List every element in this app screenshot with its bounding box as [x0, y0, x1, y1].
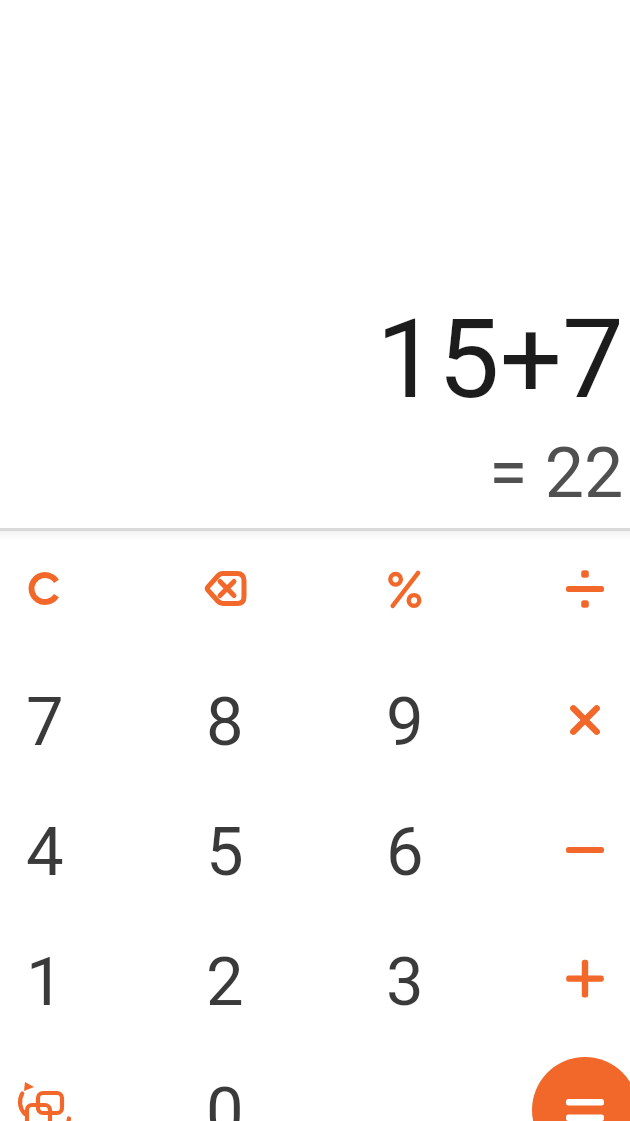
button[interactable]: [0, 525, 90, 655]
button[interactable]: [532, 1057, 630, 1121]
button[interactable]: [0, 1045, 90, 1121]
staticText: 15+7: [376, 295, 624, 424]
button[interactable]: 4: [0, 785, 90, 915]
staticText: 3: [386, 943, 424, 1022]
button[interactable]: 3: [360, 915, 450, 1045]
staticText: 2: [206, 943, 244, 1022]
staticText: 7: [26, 683, 64, 762]
button[interactable]: 7: [0, 655, 90, 785]
staticText: 1: [26, 943, 64, 1022]
staticText: 8: [206, 683, 244, 762]
button[interactable]: 0: [180, 1045, 270, 1121]
button[interactable]: 5: [180, 785, 270, 915]
staticText: 9: [386, 683, 424, 762]
staticText: 6: [386, 813, 424, 892]
button[interactable]: 2: [180, 915, 270, 1045]
button[interactable]: 1: [0, 915, 90, 1045]
staticText: 4: [26, 813, 64, 892]
staticText: 5: [206, 813, 244, 892]
button[interactable]: 9: [360, 655, 450, 785]
button[interactable]: [540, 785, 630, 915]
button[interactable]: [540, 525, 630, 655]
staticText: 0: [206, 1073, 244, 1121]
button[interactable]: [360, 525, 450, 655]
button[interactable]: [540, 655, 630, 785]
staticText: = 22: [489, 432, 624, 514]
button[interactable]: 6: [360, 785, 450, 915]
button[interactable]: [540, 915, 630, 1045]
button[interactable]: [540, 1045, 630, 1121]
button[interactable]: 8: [180, 655, 270, 785]
button[interactable]: [180, 525, 270, 655]
